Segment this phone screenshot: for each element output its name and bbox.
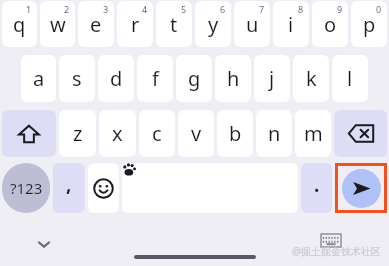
staticText: z [73, 120, 83, 147]
staticText: . [314, 172, 320, 198]
button[interactable]: v [178, 110, 214, 157]
button[interactable]: e [78, 1, 114, 47]
staticText: v [191, 120, 202, 147]
staticText: e [90, 11, 102, 38]
button[interactable]: f [137, 55, 173, 102]
staticText: r [131, 11, 140, 38]
staticText: y [208, 11, 219, 38]
staticText: 4 [142, 3, 148, 15]
button[interactable]: y [195, 1, 231, 47]
button[interactable]: s [59, 55, 95, 102]
staticText: 9 [337, 3, 343, 15]
staticText: j [269, 65, 275, 92]
staticText: t [170, 11, 178, 38]
staticText: i [288, 11, 294, 38]
button[interactable]: c [139, 110, 175, 157]
button[interactable]: r [117, 1, 153, 47]
button[interactable]: a [21, 55, 56, 102]
button[interactable]: b [217, 110, 253, 157]
staticText: a [33, 65, 45, 92]
staticText: x [112, 120, 123, 147]
button[interactable]: u [234, 1, 270, 47]
button[interactable]: t [156, 1, 192, 47]
staticText: , [66, 171, 72, 197]
staticText: @掘土掘金技术社区 [292, 244, 381, 258]
staticText: 3 [103, 3, 109, 15]
staticText: 2 [64, 3, 70, 15]
staticText: w [50, 11, 66, 38]
button[interactable]: Switch keyboard [317, 226, 345, 254]
button[interactable]: k [293, 55, 329, 102]
staticText: f [152, 65, 159, 92]
staticText: s [72, 65, 82, 92]
staticText: 1 [26, 3, 32, 15]
staticText: 5 [181, 3, 187, 15]
button[interactable]: , [53, 163, 85, 213]
staticText: 8 [298, 3, 304, 15]
staticText: o [324, 11, 337, 38]
staticText: k [306, 65, 317, 92]
button[interactable]: x [99, 110, 136, 157]
button[interactable]: p [351, 1, 387, 47]
button[interactable]: g [176, 55, 212, 102]
staticText: n [268, 120, 281, 147]
button[interactable]: q [2, 1, 37, 47]
button[interactable]: l [332, 55, 368, 102]
staticText: 6 [220, 3, 226, 15]
button[interactable]: h [215, 55, 251, 102]
button[interactable]: o [312, 1, 348, 47]
button[interactable]: j [254, 55, 290, 102]
staticText: u [246, 11, 259, 38]
button[interactable]: Backspace [334, 110, 387, 157]
staticText: g [188, 65, 201, 92]
button[interactable]: z [59, 110, 96, 157]
staticText: 0 [376, 3, 382, 15]
staticText: h [227, 65, 240, 92]
staticText: d [110, 65, 123, 92]
button[interactable]: Shift [2, 110, 56, 157]
button[interactable]: d [98, 55, 134, 102]
button[interactable]: Hide keyboard [28, 228, 60, 260]
button[interactable]: Emoji [88, 163, 119, 213]
staticText: 7 [259, 3, 265, 15]
staticText: q [13, 11, 26, 38]
button[interactable]: n [256, 110, 292, 157]
staticText: ?123 [10, 178, 43, 198]
button[interactable]: Send [338, 166, 384, 210]
button[interactable]: i [273, 1, 309, 47]
staticText: p [363, 11, 376, 38]
staticText: m [304, 120, 323, 147]
button[interactable]: Space [122, 163, 298, 213]
staticText: b [229, 120, 242, 147]
staticText: c [152, 120, 162, 147]
button[interactable]: w [40, 1, 75, 47]
staticText: l [347, 65, 353, 92]
button[interactable]: m [295, 110, 331, 157]
button[interactable]: . [301, 163, 332, 213]
button[interactable]: ?123 [2, 163, 50, 213]
